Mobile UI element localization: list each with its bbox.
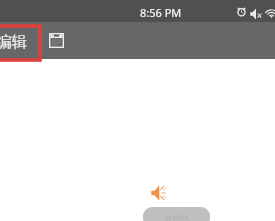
staticText: 静音模式 [166,214,190,221]
button[interactable]: 静音模式 [143,207,210,221]
staticText: 8:56 PM [140,5,182,20]
staticText: 编辑 [0,32,27,52]
button[interactable]: 编辑 [0,22,31,59]
button[interactable]: Save [45,22,68,59]
